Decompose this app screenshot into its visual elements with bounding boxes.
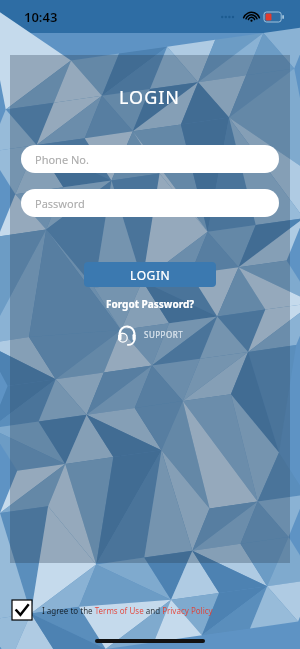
staticText: Forgot Password? [106, 297, 195, 311]
button[interactable]: 24/7 Support [112, 321, 188, 347]
staticText: Phone No. [35, 152, 89, 167]
staticText: SUPPORT [144, 329, 184, 340]
button[interactable]: I agree to the Terms of Use and Privacy … [12, 600, 300, 620]
staticText: LOGIN [119, 85, 181, 110]
staticText: Password [35, 196, 85, 211]
staticText: I agree to the Terms of Use and Privacy … [42, 605, 213, 616]
button[interactable]: Password [21, 189, 279, 217]
staticText: 10:43 [24, 8, 58, 26]
other: 24/7 Support [116, 323, 138, 345]
button[interactable]: Phone No. [21, 145, 279, 173]
button[interactable]: LOGIN [84, 262, 216, 287]
button[interactable]: Forgot Password? [100, 295, 201, 313]
staticText: LOGIN [130, 267, 171, 283]
